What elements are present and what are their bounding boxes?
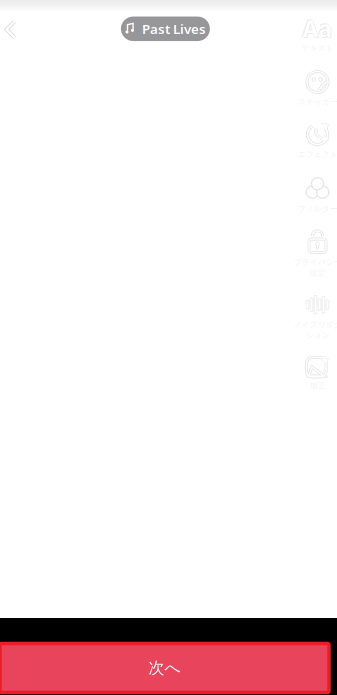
staticText: 加工 <box>309 381 325 391</box>
staticText: Past Lives <box>142 20 206 38</box>
staticText: Aa <box>303 14 333 44</box>
button[interactable]: 次へ <box>0 643 329 692</box>
button[interactable]: エフェクト <box>296 122 337 166</box>
button[interactable]: ステッカー <box>296 70 337 114</box>
staticText: 次へ <box>148 658 180 678</box>
button[interactable]: Aa <box>296 16 337 60</box>
button[interactable]: プライバシー 設定 <box>296 230 337 278</box>
button[interactable]: Back <box>0 12 25 46</box>
staticText: Aa <box>302 13 332 43</box>
button[interactable]: フィルター <box>296 177 337 221</box>
button[interactable]: Past Lives <box>121 17 210 41</box>
button[interactable]: 加工 <box>296 354 337 398</box>
staticText: Aa <box>302 13 332 43</box>
button[interactable]: ノイズリダク ション <box>296 293 337 340</box>
